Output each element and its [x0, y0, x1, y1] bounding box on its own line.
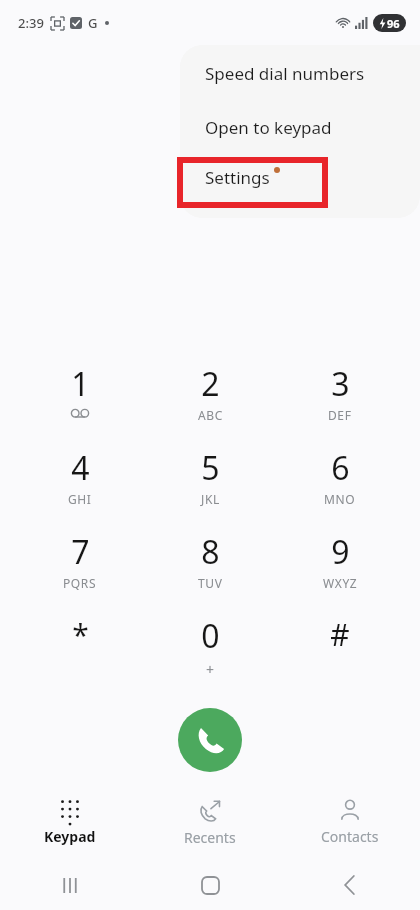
staticText: JKL	[201, 491, 220, 507]
button[interactable]: Back	[280, 860, 420, 910]
staticText: +	[206, 660, 215, 679]
staticText: Open to keypad	[205, 116, 332, 139]
staticText: *	[72, 614, 89, 655]
staticText: WXYZ	[323, 575, 358, 591]
button[interactable]: Open to keypad	[180, 102, 420, 152]
staticText: 6	[331, 446, 350, 490]
staticText: 8	[201, 530, 220, 574]
button[interactable]: 3	[275, 362, 405, 446]
button[interactable]: 0	[145, 614, 275, 692]
button[interactable]: Speed dial numbers	[180, 45, 420, 102]
button[interactable]: Recent apps	[0, 860, 140, 910]
button[interactable]: *	[15, 614, 145, 692]
button[interactable]: 8	[145, 530, 275, 614]
staticText: 5	[201, 446, 220, 490]
staticText: 3	[331, 362, 350, 406]
button[interactable]: 1	[15, 362, 145, 446]
staticText: Recents	[184, 828, 236, 847]
button[interactable]: 5	[145, 446, 275, 530]
button[interactable]: 6	[275, 446, 405, 530]
staticText: Speed dial numbers	[205, 62, 365, 85]
button[interactable]: Settings	[180, 152, 420, 202]
button[interactable]: Home	[140, 860, 280, 910]
button[interactable]: 4	[15, 446, 145, 530]
staticText: 7	[71, 530, 90, 574]
staticText: #	[330, 614, 350, 655]
staticText: 2:39	[18, 14, 44, 32]
staticText: DEF	[328, 407, 352, 423]
staticText: 9	[331, 530, 350, 574]
staticText: Settings	[205, 166, 270, 189]
staticText: 0	[201, 614, 220, 658]
staticText: TUV	[198, 575, 223, 591]
staticText: 4	[71, 446, 90, 490]
button[interactable]: Keypad	[0, 793, 140, 853]
staticText: 96	[387, 16, 400, 31]
staticText: 2	[201, 362, 220, 406]
staticText: GHI	[68, 491, 92, 507]
staticText: Keypad	[44, 827, 96, 846]
button[interactable]: Recents	[140, 793, 280, 853]
button[interactable]: 7	[15, 530, 145, 614]
staticText: G	[88, 14, 98, 32]
button[interactable]: #	[275, 614, 405, 692]
staticText: MNO	[324, 491, 356, 507]
button[interactable]: 9	[275, 530, 405, 614]
staticText: PQRS	[63, 575, 97, 591]
staticText: ABC	[198, 407, 223, 423]
button[interactable]: Contacts	[280, 793, 420, 853]
button[interactable]: 2	[145, 362, 275, 446]
button[interactable]: Call	[178, 708, 242, 772]
staticText: Contacts	[321, 827, 379, 846]
staticText: 1	[71, 362, 90, 406]
